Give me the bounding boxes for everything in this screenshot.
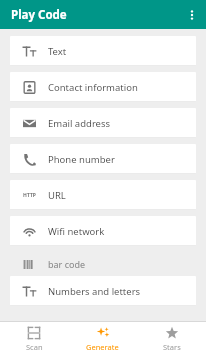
other: Scan [27, 326, 41, 340]
staticText: Contact information [48, 81, 138, 94]
button[interactable]: Text [10, 36, 196, 66]
staticText: bar code [48, 258, 86, 270]
staticText: Wifi network [48, 225, 105, 238]
staticText: Phone number [48, 153, 115, 166]
button[interactable]: Email address [10, 108, 196, 138]
button[interactable]: Contact information [10, 72, 196, 102]
other: Stars [165, 326, 179, 340]
staticText: Text [48, 45, 67, 58]
staticText: Email address [48, 117, 111, 130]
button[interactable]: HTTP [10, 180, 196, 210]
staticText: Generate [86, 342, 119, 352]
button[interactable]: Generate [68, 322, 137, 355]
button[interactable]: Numbers and letters [10, 276, 196, 306]
staticText: HTTP [23, 192, 36, 199]
staticText: Stars [163, 342, 181, 352]
button[interactable]: Wifi network [10, 216, 196, 246]
button[interactable]: Phone number [10, 144, 196, 174]
staticText: Numbers and letters [48, 285, 141, 298]
button[interactable]: Stars [137, 322, 206, 355]
button[interactable]: More options [177, 0, 206, 29]
staticText: Scan [26, 342, 43, 352]
staticText: URL [48, 189, 66, 202]
other: Generate [96, 326, 110, 340]
button[interactable]: Scan [0, 322, 68, 355]
staticText: Play Code [11, 7, 67, 23]
